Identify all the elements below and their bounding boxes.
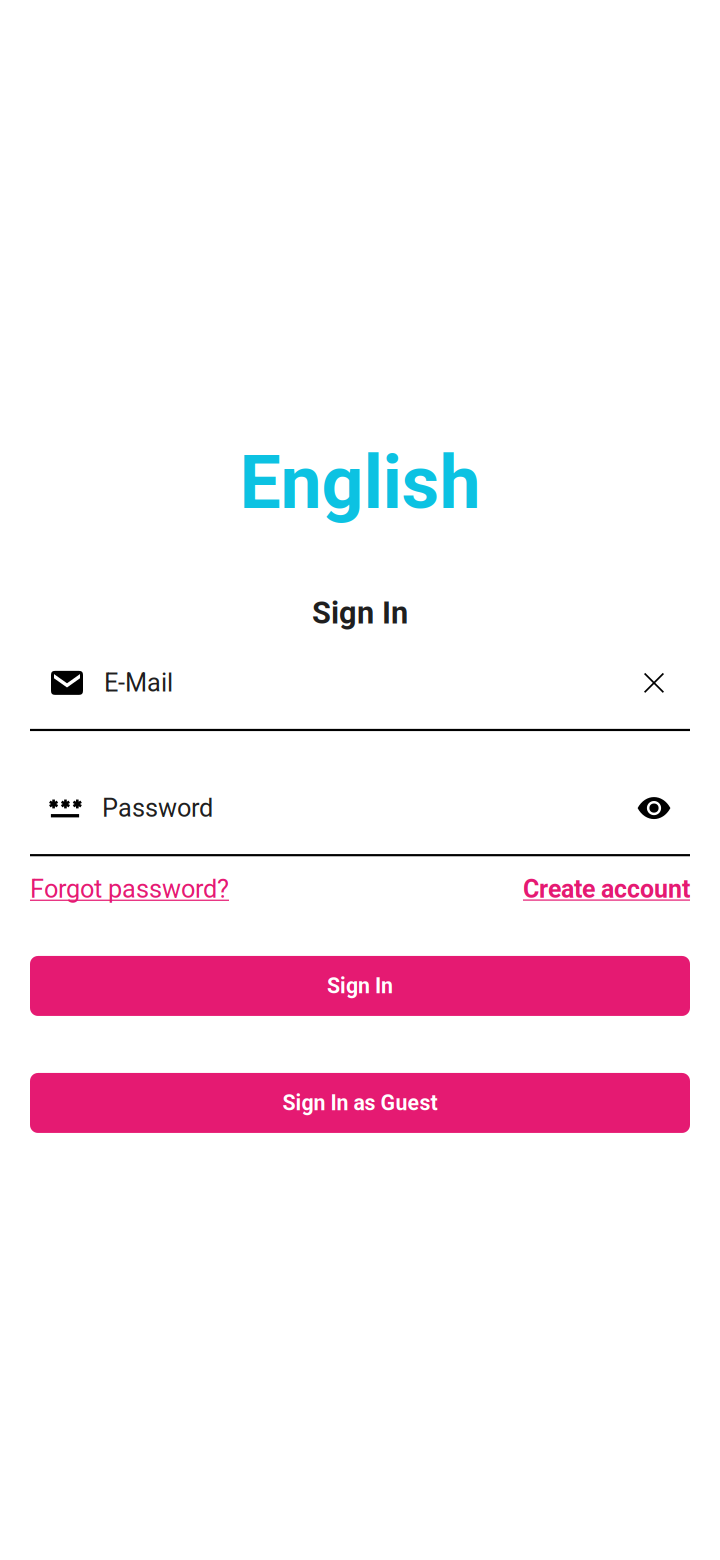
staticText: Sign In: [327, 973, 393, 998]
button[interactable]: Sign In as Guest: [30, 1073, 690, 1133]
staticText: Create account: [523, 874, 690, 904]
staticText: English: [239, 440, 480, 526]
staticText: Sign In as Guest: [282, 1090, 437, 1115]
staticText: Password: [102, 793, 213, 823]
button[interactable]: Password: [49, 791, 630, 825]
button[interactable]: Clear e-mail: [630, 666, 678, 700]
button[interactable]: Forgot password?: [30, 874, 229, 904]
button[interactable]: E-Mail: [51, 666, 630, 700]
staticText: E-Mail: [104, 668, 173, 698]
button[interactable]: Show password: [630, 791, 678, 825]
button[interactable]: Sign In: [30, 956, 690, 1016]
button[interactable]: Create account: [523, 874, 690, 904]
staticText: Sign In: [312, 595, 408, 631]
staticText: Forgot password?: [30, 874, 229, 904]
